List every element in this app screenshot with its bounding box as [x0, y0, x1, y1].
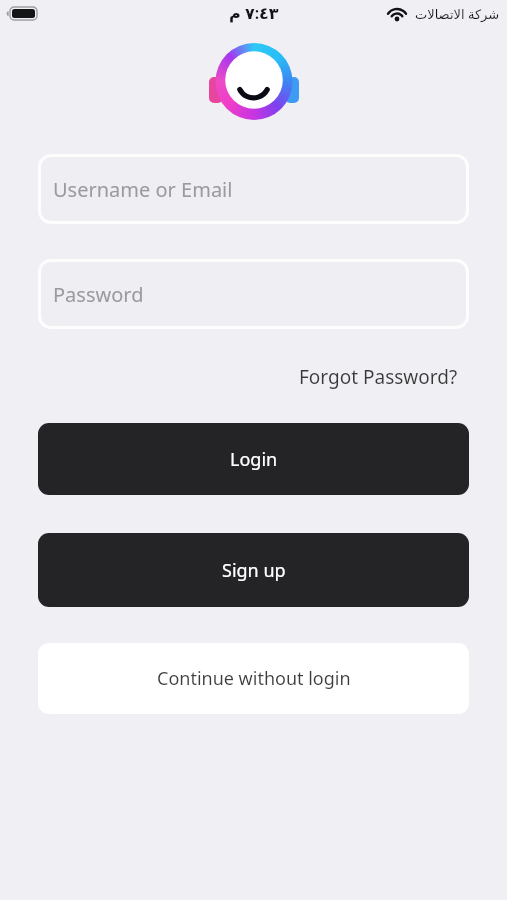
button[interactable]: Username or Email	[38, 154, 469, 224]
staticText: شركة الاتصالات	[415, 5, 500, 23]
staticText: Username or Email	[53, 176, 233, 203]
button[interactable]: Login	[38, 423, 469, 495]
staticText: ٧:٤٣ م	[229, 2, 279, 24]
button[interactable]: Forgot Password?	[299, 364, 458, 390]
staticText: Sign up	[222, 558, 286, 583]
staticText: Continue without login	[157, 666, 351, 691]
button[interactable]: Password	[38, 259, 469, 329]
button[interactable]: Sign up	[38, 533, 469, 607]
staticText: Password	[53, 281, 144, 308]
button[interactable]: Continue without login	[38, 643, 469, 714]
staticText: Login	[230, 447, 278, 472]
staticText: Forgot Password?	[299, 364, 458, 390]
